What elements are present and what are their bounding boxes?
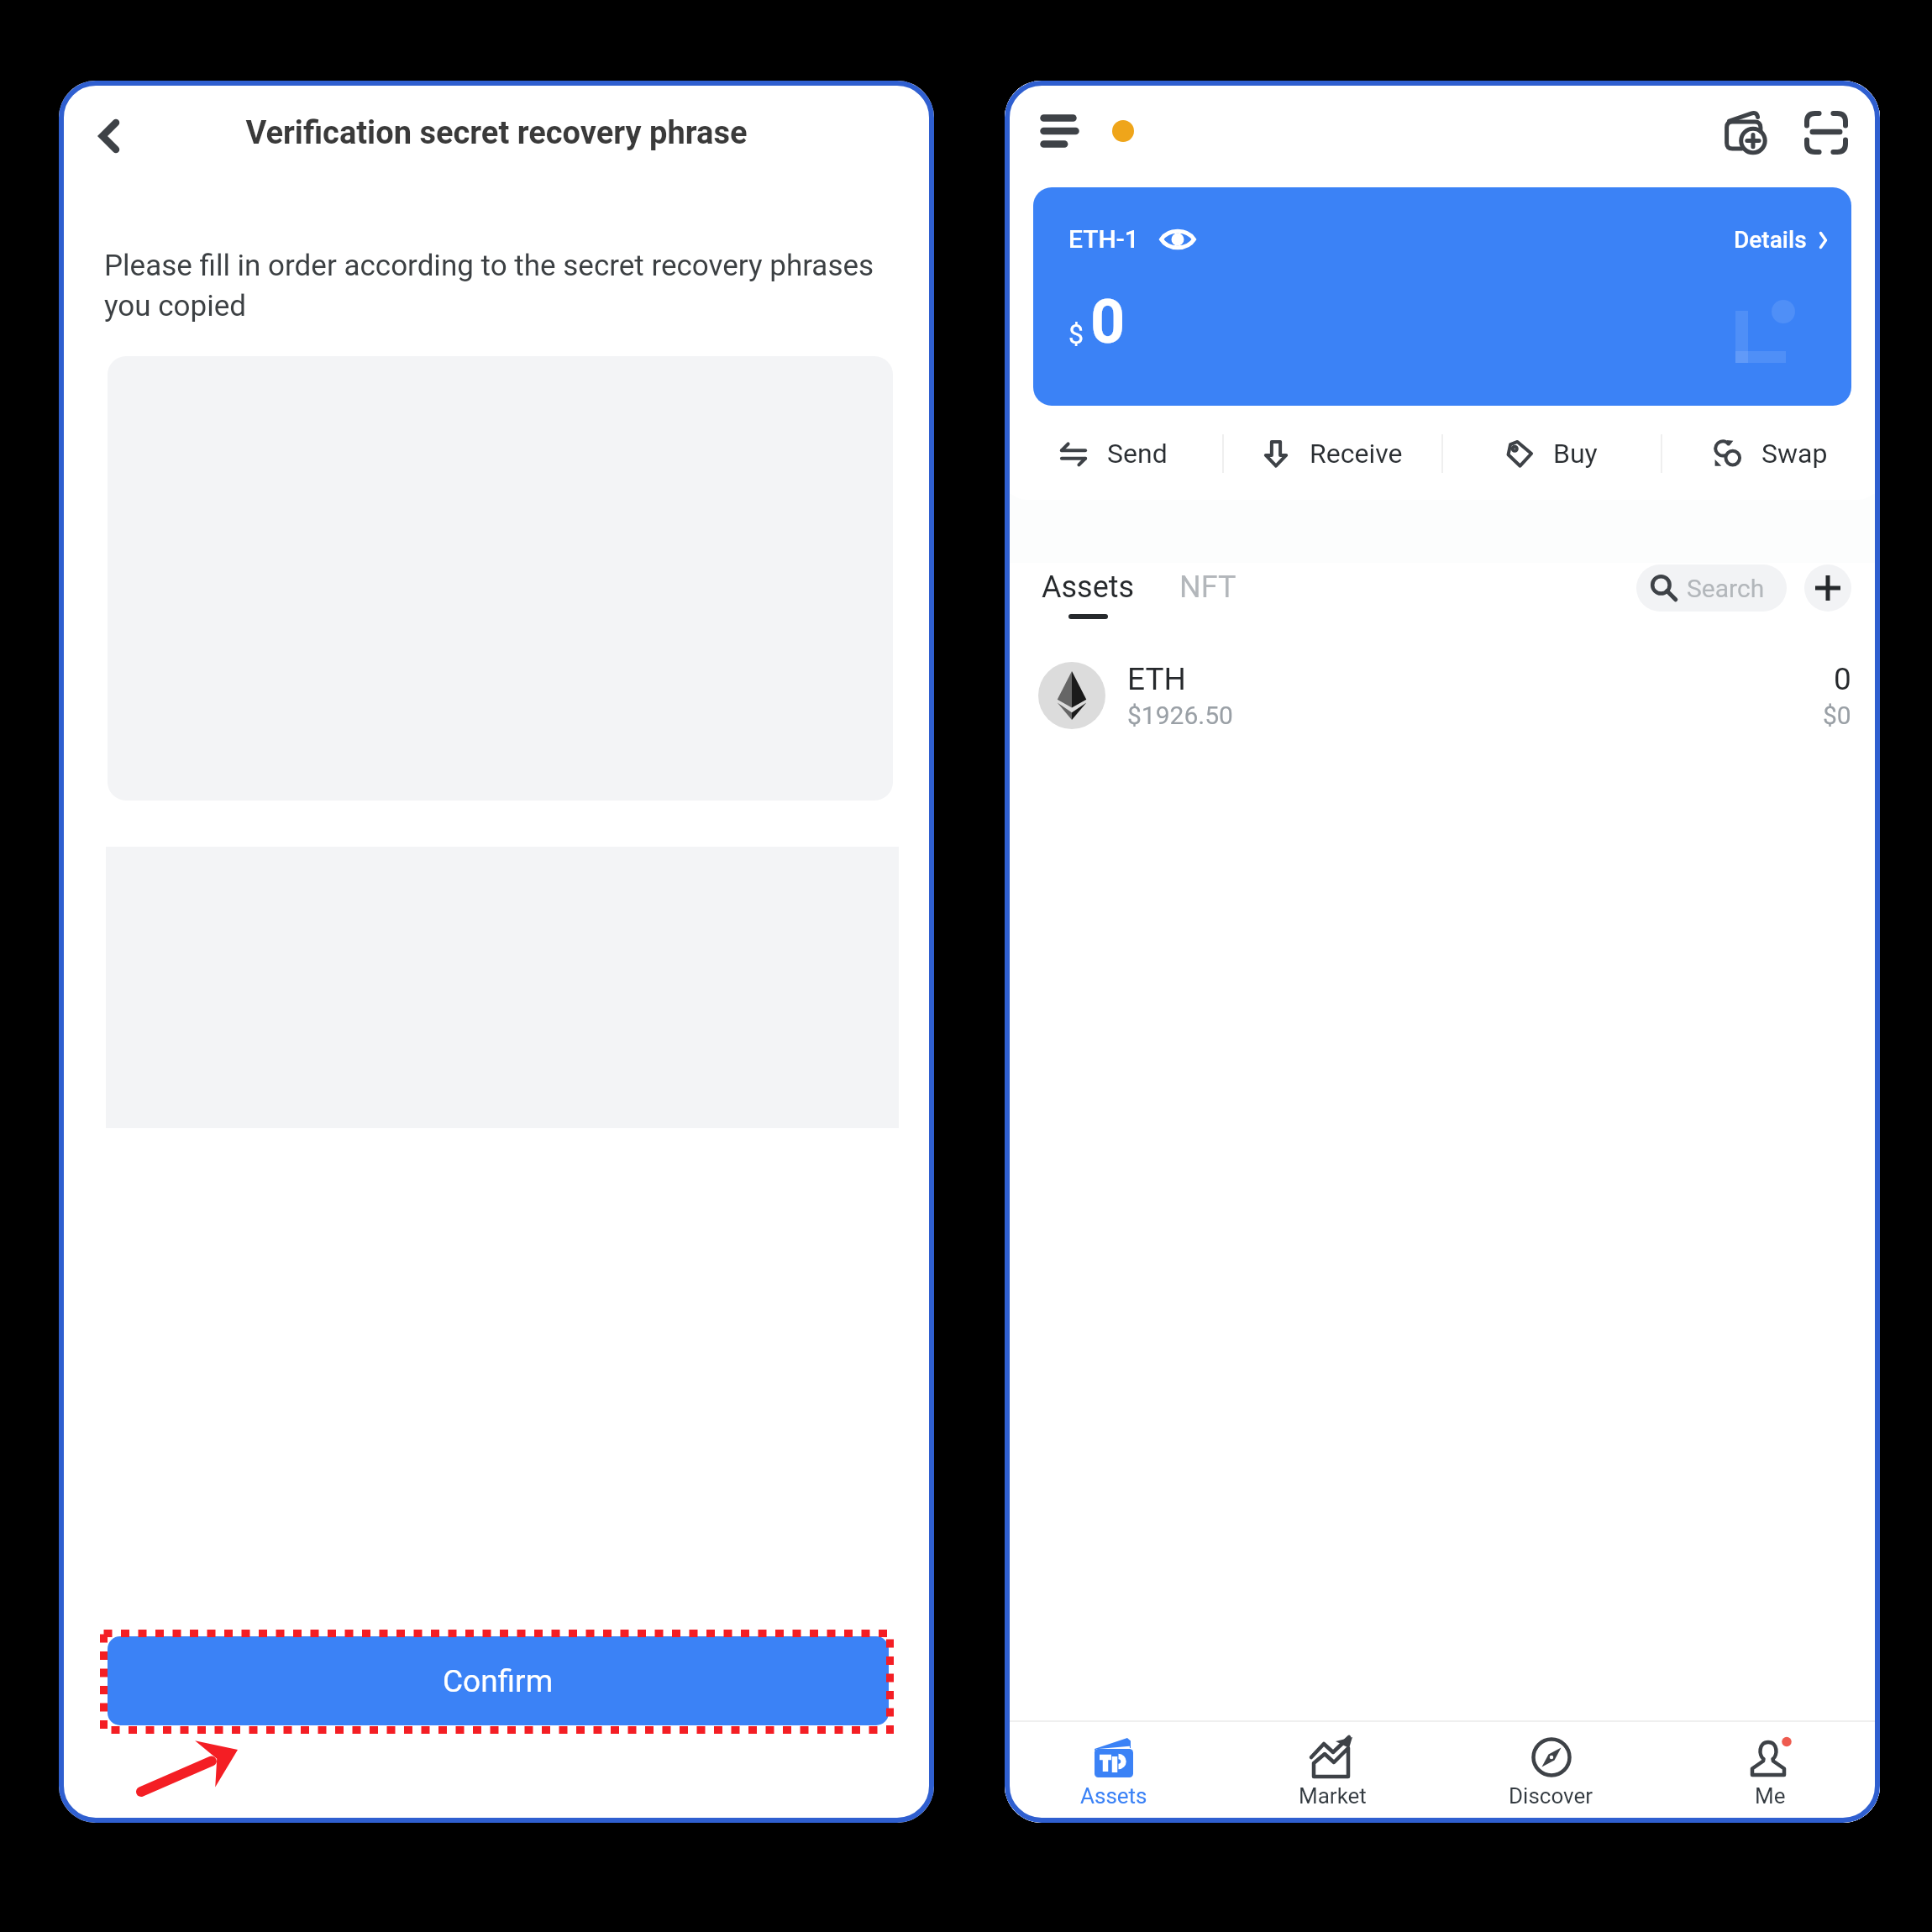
button[interactable]: Send <box>1005 407 1222 500</box>
button[interactable]: Swap <box>1662 407 1880 500</box>
button[interactable]: Details <box>1734 226 1828 254</box>
staticText: $ <box>1068 318 1084 350</box>
staticText: Assets <box>1042 570 1135 605</box>
button[interactable]: NFT <box>1179 570 1236 605</box>
staticText: Verification secret recovery phrase <box>59 114 934 152</box>
staticText: Details <box>1734 226 1807 254</box>
staticText: Please fill in order according to the se… <box>104 249 885 323</box>
button[interactable]: Add token <box>1804 564 1851 612</box>
button[interactable]: Buy <box>1443 407 1661 500</box>
staticText: Receive <box>1310 438 1403 470</box>
staticText: Market <box>1299 1783 1367 1809</box>
staticText: Swap <box>1761 438 1828 470</box>
button[interactable]: Market <box>1223 1722 1441 1823</box>
button[interactable]: ETH-1 <box>1033 187 1851 406</box>
staticText: $0 <box>1823 701 1851 730</box>
staticText: $1926.50 <box>1127 701 1233 730</box>
staticText: 0 <box>1090 286 1126 357</box>
staticText: Send <box>1107 438 1168 470</box>
staticText: Search <box>1687 574 1765 603</box>
staticText: Me <box>1755 1783 1786 1809</box>
staticText: Buy <box>1553 438 1598 470</box>
button[interactable]: Assets <box>1005 1722 1223 1823</box>
button[interactable]: Receive <box>1224 407 1441 500</box>
staticText: ETH <box>1127 661 1186 697</box>
button[interactable]: Assets <box>1042 570 1135 619</box>
staticText: 0 <box>1834 661 1851 697</box>
button[interactable]: Menu <box>1017 89 1101 173</box>
button[interactable]: Back <box>72 99 146 173</box>
button[interactable]: Discover <box>1441 1722 1661 1823</box>
button[interactable]: Add wallet <box>1705 92 1786 173</box>
staticText: Confirm <box>443 1663 554 1699</box>
button[interactable]: Search <box>1636 564 1787 612</box>
button[interactable]: ETH <box>1005 645 1880 746</box>
button[interactable]: Me <box>1661 1722 1880 1823</box>
staticText: Discover <box>1509 1783 1593 1809</box>
button[interactable]: Scan <box>1786 92 1866 173</box>
button[interactable]: Confirm <box>108 1636 889 1725</box>
staticText: ETH-1 <box>1068 224 1139 254</box>
staticText: Assets <box>1080 1783 1147 1809</box>
